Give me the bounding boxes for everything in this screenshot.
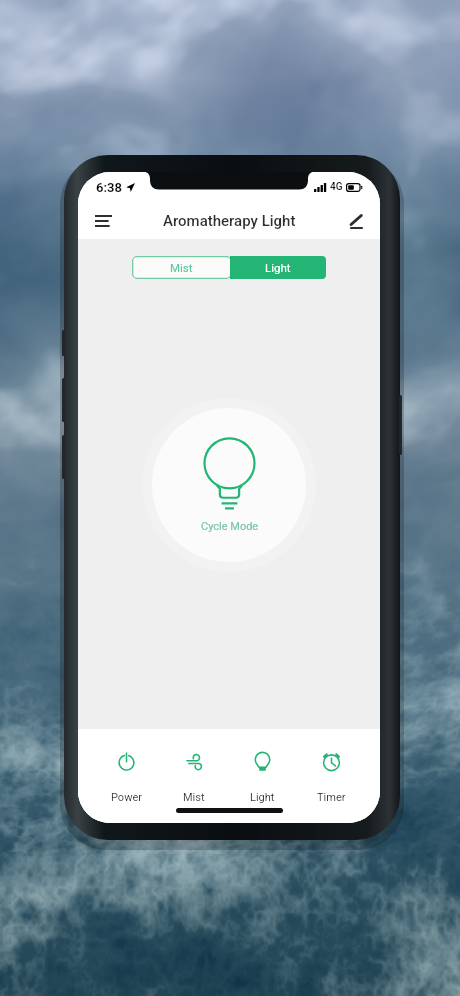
staticText: Power (111, 791, 142, 804)
staticText: 4G (330, 181, 343, 193)
button[interactable]: Mist (160, 752, 228, 804)
button[interactable]: Power (92, 752, 160, 804)
button[interactable]: Menu (86, 204, 120, 238)
button[interactable]: Timer (297, 752, 366, 804)
button[interactable]: Cycle Mode (142, 398, 316, 572)
staticText: Mist (170, 261, 193, 274)
button[interactable]: Light (230, 256, 326, 279)
button[interactable]: Edit (340, 205, 372, 237)
staticText: Aromatherapy Light (163, 212, 296, 230)
button[interactable]: Mist (132, 256, 230, 279)
staticText: Cycle Mode (201, 520, 259, 533)
staticText: Timer (317, 791, 346, 804)
staticText: Light (265, 261, 291, 274)
staticText: 6:38 (96, 180, 122, 195)
button[interactable]: Light (228, 752, 297, 804)
staticText: Mist (183, 791, 205, 804)
staticText: Light (250, 791, 275, 804)
